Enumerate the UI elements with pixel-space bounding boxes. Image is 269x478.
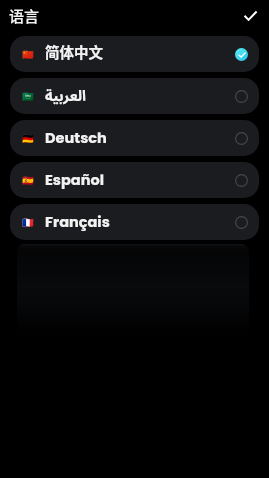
staticText: 语言	[9, 5, 40, 27]
staticText: 🇸🇦	[22, 91, 33, 102]
staticText: Deutsch	[45, 128, 107, 148]
staticText: 🇪🇸	[22, 175, 33, 186]
staticText: 🇨🇳	[22, 49, 33, 60]
staticText: العربية	[45, 81, 86, 112]
button[interactable]: 🇩🇪	[10, 120, 259, 156]
staticText: 🇫🇷	[22, 217, 33, 228]
button[interactable]: Confirm selection	[239, 5, 261, 27]
staticText: Français	[45, 212, 110, 232]
button[interactable]: 🇪🇸	[10, 162, 259, 198]
button[interactable]: 🇫🇷	[10, 204, 259, 240]
staticText: 简体中文	[45, 41, 103, 62]
button[interactable]: 🇸🇦	[10, 78, 259, 114]
staticText: 🇩🇪	[22, 133, 33, 144]
staticText: Español	[45, 170, 104, 190]
button[interactable]: 🇨🇳	[10, 36, 259, 72]
